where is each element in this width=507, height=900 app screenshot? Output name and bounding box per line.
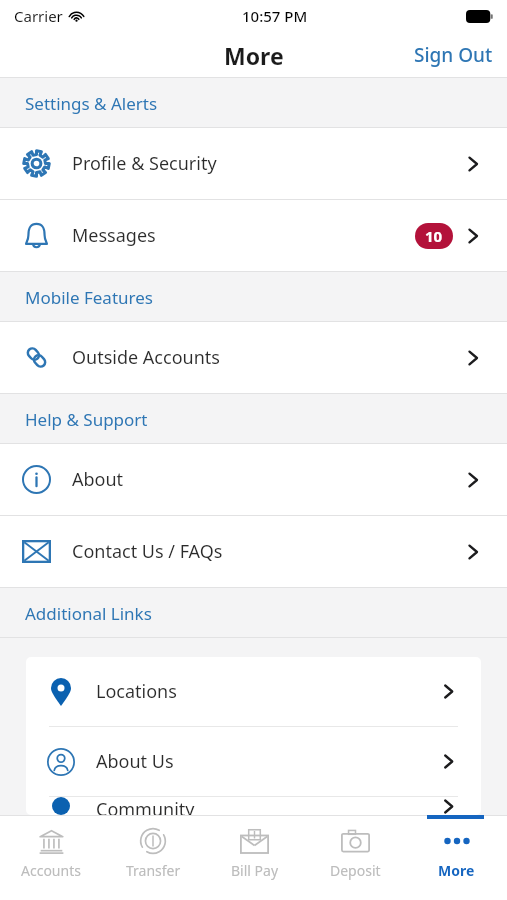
- button[interactable]: Community: [26, 797, 481, 815]
- button[interactable]: Messages: [0, 200, 507, 271]
- button[interactable]: Bill Pay: [204, 815, 305, 900]
- staticText: Settings & Alerts: [25, 92, 158, 115]
- other: Accounts: [38, 828, 65, 855]
- staticText: Accounts: [21, 861, 81, 880]
- staticText: More: [438, 861, 475, 880]
- staticText: Bill Pay: [231, 861, 279, 880]
- button[interactable]: Accounts: [0, 815, 102, 900]
- button[interactable]: Sign Out: [400, 36, 507, 74]
- staticText: About: [72, 467, 124, 492]
- other: Locations: [51, 678, 71, 706]
- staticText: Locations: [96, 679, 177, 704]
- button[interactable]: Deposit: [305, 815, 406, 900]
- other: More: [443, 836, 471, 846]
- other: About: [22, 465, 51, 494]
- button[interactable]: About: [0, 444, 507, 515]
- staticText: Profile & Security: [72, 151, 217, 176]
- staticText: More: [224, 40, 284, 71]
- other: Transfer: [139, 827, 167, 855]
- other: Deposit: [341, 829, 370, 853]
- staticText: Additional Links: [25, 602, 152, 625]
- button[interactable]: Profile & Security: [0, 128, 507, 199]
- other: Outside Accounts: [22, 343, 51, 372]
- staticText: Carrier: [14, 6, 63, 26]
- staticText: Community: [96, 797, 195, 815]
- other: About Us: [47, 748, 75, 776]
- button[interactable]: About Us: [26, 727, 481, 796]
- staticText: Outside Accounts: [72, 345, 220, 370]
- button[interactable]: Contact Us: [0, 516, 507, 587]
- button[interactable]: Outside Accounts: [0, 322, 507, 393]
- button[interactable]: More: [406, 815, 507, 900]
- other: Community: [47, 797, 75, 815]
- staticText: Mobile Features: [25, 286, 153, 309]
- staticText: Sign Out: [414, 42, 493, 68]
- staticText: Contact Us / FAQs: [72, 539, 223, 564]
- staticText: Deposit: [330, 861, 381, 880]
- staticText: Messages: [72, 223, 156, 248]
- staticText: Transfer: [126, 861, 181, 880]
- other: Profile & Security: [22, 149, 51, 178]
- button[interactable]: Transfer: [102, 815, 204, 900]
- staticText: 10: [425, 226, 443, 246]
- staticText: Help & Support: [25, 408, 148, 431]
- button[interactable]: Locations: [26, 657, 481, 726]
- staticText: About Us: [96, 749, 174, 774]
- other: Messages: [22, 221, 51, 250]
- other: Contact Us: [22, 540, 51, 563]
- staticText: 10:57 PM: [242, 6, 308, 26]
- other: Bill Pay: [240, 829, 269, 854]
